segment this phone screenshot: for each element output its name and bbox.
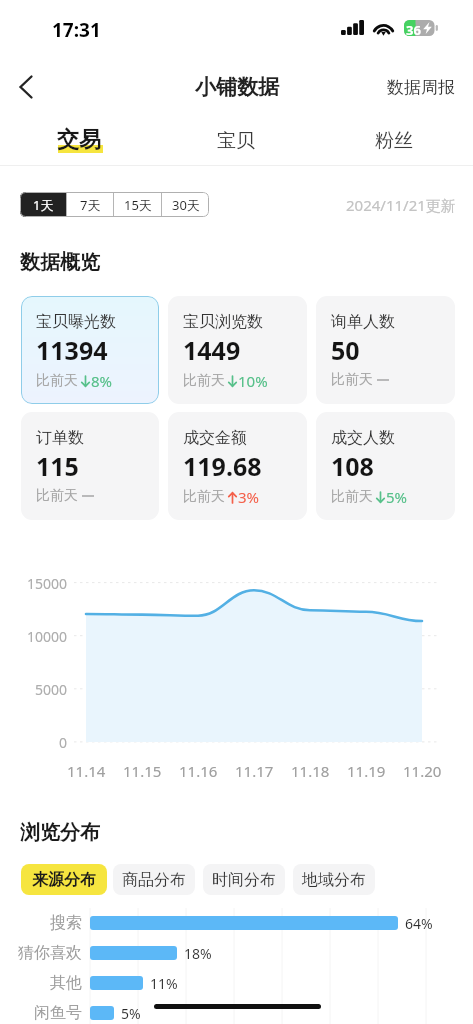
button[interactable]: Back — [5, 66, 47, 108]
staticText: 商品分布 — [122, 870, 186, 890]
staticText: 比前天 — [331, 371, 373, 389]
button[interactable]: 地域分布 — [293, 864, 375, 895]
button[interactable]: 7天 — [67, 192, 113, 217]
staticText: 64% — [405, 914, 433, 933]
staticText: 比前天 — [331, 488, 373, 506]
button[interactable]: 时间分布 — [203, 864, 285, 895]
staticText: 11394 — [36, 333, 108, 367]
staticText: 数据概览 — [20, 250, 100, 275]
staticText: 10% — [238, 371, 268, 391]
staticText: 成交人数 — [331, 428, 395, 448]
staticText: 比前天 — [36, 372, 78, 390]
staticText: 粉丝 — [375, 129, 413, 153]
staticText: 119.68 — [183, 449, 262, 483]
staticText: 小铺数据 — [195, 74, 279, 100]
staticText: 5% — [121, 1004, 141, 1023]
button[interactable]: 其他 — [0, 972, 473, 994]
staticText: 浏览分布 — [20, 820, 100, 845]
staticText: 搜索 — [50, 913, 82, 933]
button[interactable]: 15天 — [114, 192, 161, 217]
staticText: 15天 — [124, 196, 152, 214]
staticText: 比前天 — [183, 488, 225, 506]
staticText: 36 — [406, 21, 421, 37]
staticText: 115 — [36, 449, 79, 483]
staticText: 11.15 — [123, 761, 162, 781]
staticText: 交易 — [57, 126, 101, 154]
staticText: 闲鱼号 — [34, 1003, 82, 1023]
button[interactable]: 粉丝 — [315, 117, 473, 166]
staticText: 11.19 — [347, 761, 386, 781]
staticText: 15000 — [27, 574, 68, 593]
staticText: 宝贝浏览数 — [183, 312, 263, 332]
staticText: 11.14 — [67, 761, 106, 781]
button[interactable]: 成交金额 — [168, 412, 307, 520]
staticText: 宝贝 — [217, 129, 255, 153]
staticText: 18% — [184, 944, 212, 963]
staticText: 11.20 — [403, 761, 442, 781]
staticText: 8% — [91, 371, 113, 391]
staticText: 1天 — [33, 196, 54, 214]
staticText: 11% — [150, 974, 178, 993]
button[interactable]: 商品分布 — [113, 864, 195, 895]
staticText: 3% — [238, 487, 260, 507]
button[interactable]: 交易 — [0, 117, 157, 166]
staticText: 比前天 — [36, 487, 78, 505]
staticText: 11.18 — [291, 761, 330, 781]
staticText: 来源分布 — [32, 870, 96, 890]
button[interactable]: 搜索 — [0, 912, 473, 934]
button[interactable]: 30天 — [162, 192, 209, 217]
staticText: 订单数 — [36, 428, 84, 448]
staticText: 17:31 — [52, 17, 101, 43]
staticText: 时间分布 — [212, 870, 276, 890]
staticText: 11.17 — [235, 761, 274, 781]
staticText: 猜你喜欢 — [18, 943, 82, 963]
button[interactable]: 成交人数 — [316, 412, 455, 520]
staticText: 5000 — [35, 680, 68, 699]
staticText: 询单人数 — [331, 312, 395, 332]
staticText: 地域分布 — [302, 870, 366, 890]
button[interactable]: 宝贝浏览数 — [168, 296, 307, 404]
staticText: 成交金额 — [183, 428, 247, 448]
staticText: 30天 — [172, 196, 200, 214]
button[interactable]: 数据周报 — [375, 67, 473, 108]
button[interactable]: 订单数 — [21, 412, 159, 520]
staticText: 其他 — [50, 973, 82, 993]
button[interactable]: 猜你喜欢 — [0, 942, 473, 964]
staticText: 2024/11/21更新 — [346, 195, 456, 215]
button[interactable]: 宝贝 — [157, 117, 315, 166]
button[interactable]: 来源分布 — [21, 864, 107, 895]
staticText: 11.16 — [179, 761, 218, 781]
staticText: 5% — [386, 487, 408, 507]
staticText: 1449 — [183, 333, 241, 367]
button[interactable]: 询单人数 — [316, 296, 455, 404]
staticText: 10000 — [27, 627, 68, 646]
staticText: 7天 — [80, 196, 101, 214]
staticText: 0 — [59, 733, 68, 752]
staticText: 比前天 — [183, 372, 225, 390]
button[interactable]: 1天 — [20, 192, 66, 217]
button[interactable]: 闲鱼号 — [0, 1002, 473, 1024]
button[interactable]: 宝贝曝光数 — [21, 296, 159, 404]
staticText: 50 — [331, 333, 360, 367]
staticText: 宝贝曝光数 — [36, 312, 116, 332]
staticText: 108 — [331, 449, 374, 483]
staticText: 数据周报 — [387, 77, 455, 98]
